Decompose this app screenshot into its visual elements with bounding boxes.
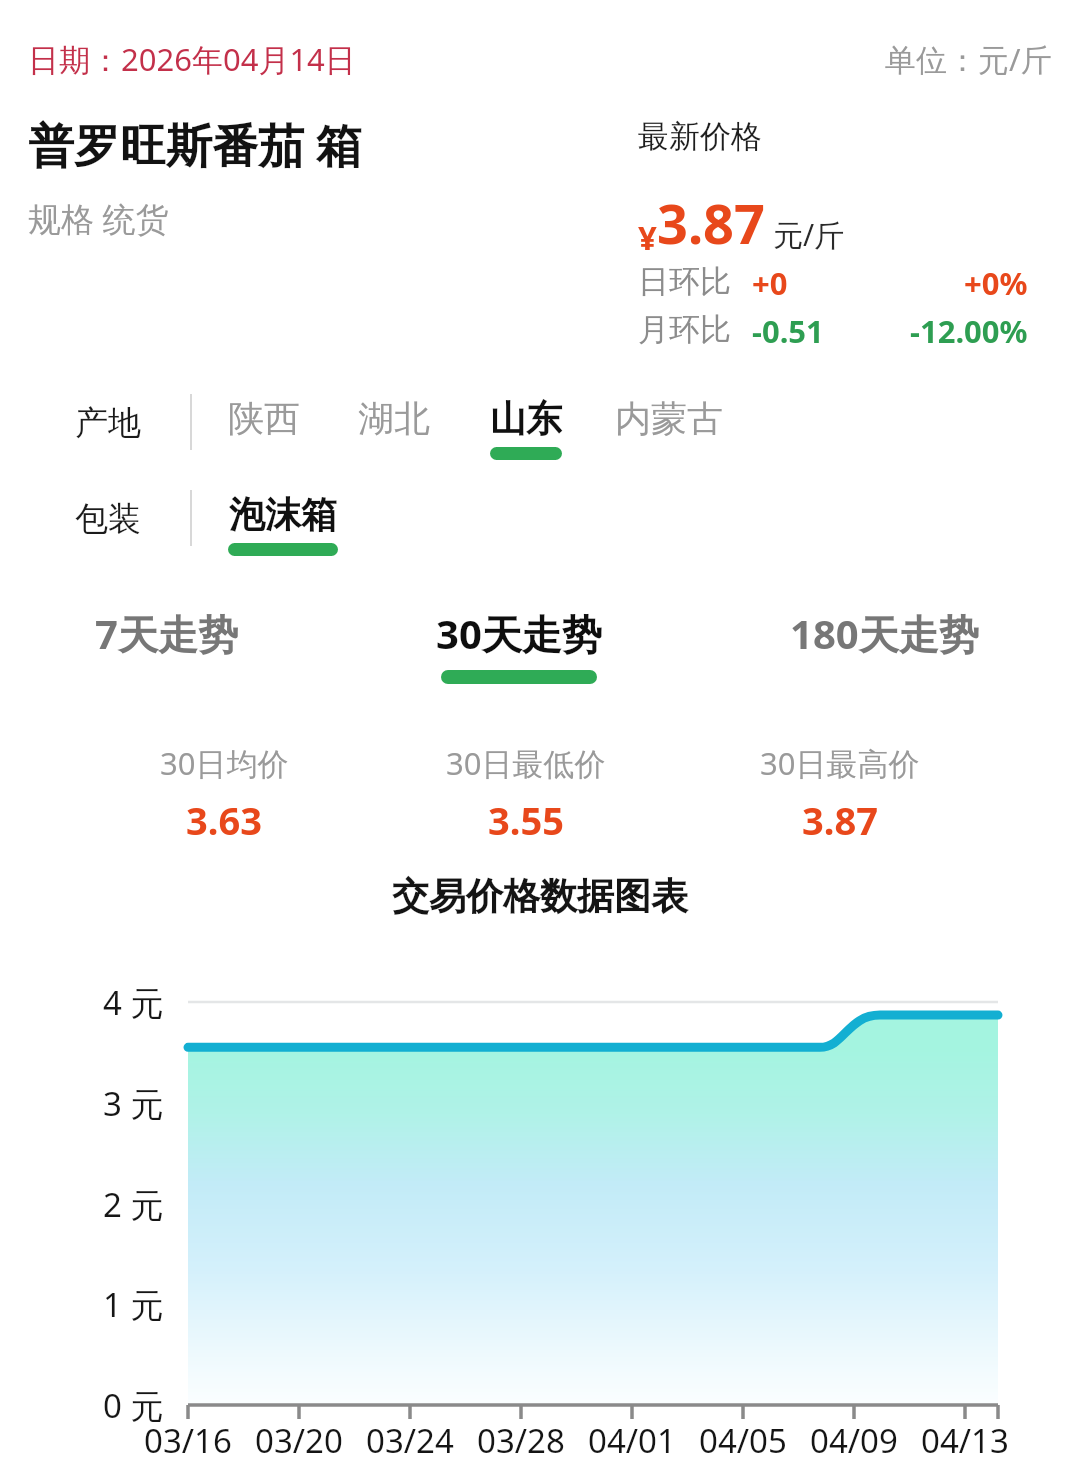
staticText: 04/01 <box>588 1418 676 1462</box>
staticText: 交易价格数据图表 <box>0 873 1080 920</box>
staticText: 产地 <box>75 402 141 444</box>
staticText: 180天走势 <box>790 606 979 661</box>
staticText: 4 元 <box>103 980 164 1025</box>
staticText: 3.55 <box>488 794 564 846</box>
button[interactable]: 湖北 <box>358 396 430 447</box>
button[interactable]: 山东 <box>490 396 562 460</box>
staticText: 0 元 <box>103 1383 164 1428</box>
staticText: 3.87 <box>657 186 765 260</box>
staticText: 03/28 <box>477 1418 565 1462</box>
staticText: 普罗旺斯番茄 箱 <box>28 113 362 176</box>
staticText: 2 元 <box>103 1182 164 1227</box>
button[interactable]: 泡沫箱 <box>228 492 338 556</box>
staticText: 3 元 <box>103 1081 164 1126</box>
staticText: +0 <box>752 262 788 304</box>
staticText: -0.51 <box>752 310 824 352</box>
staticText: 泡沫箱 <box>229 492 337 537</box>
staticText: 3.87 <box>802 794 878 846</box>
staticText: ¥ <box>638 215 657 260</box>
staticText: 30日最高价 <box>760 742 920 784</box>
staticText: 03/24 <box>366 1418 454 1462</box>
staticText: 03/20 <box>255 1418 343 1462</box>
staticText: -12.00% <box>910 310 1028 352</box>
staticText: 1 元 <box>103 1282 164 1327</box>
staticText: 月环比 <box>638 310 731 349</box>
staticText: 04/09 <box>810 1418 898 1462</box>
staticText: 04/05 <box>699 1418 787 1462</box>
button[interactable]: 内蒙古 <box>615 396 723 447</box>
staticText: 日期：2026年04月14日 <box>28 38 356 80</box>
staticText: 30天走势 <box>436 606 602 661</box>
button[interactable]: 7天走势 <box>16 606 316 696</box>
staticText: 最新价格 <box>638 117 762 156</box>
staticText: 包装 <box>75 498 141 540</box>
button[interactable]: 30天走势 <box>369 606 669 696</box>
staticText: 规格 统货 <box>28 196 169 241</box>
staticText: +0% <box>964 262 1028 304</box>
button[interactable]: 180天走势 <box>734 606 1034 696</box>
staticText: 元/斤 <box>773 214 845 255</box>
staticText: 30日最低价 <box>446 742 606 784</box>
staticText: 单位：元/斤 <box>885 38 1052 80</box>
staticText: 04/13 <box>921 1418 1009 1462</box>
staticText: 陕西 <box>228 396 300 441</box>
staticText: 03/16 <box>144 1418 232 1462</box>
staticText: 3.63 <box>186 794 262 846</box>
staticText: 内蒙古 <box>615 396 723 441</box>
staticText: 7天走势 <box>95 606 238 661</box>
staticText: 30日均价 <box>160 742 289 784</box>
button[interactable]: 陕西 <box>228 396 300 447</box>
staticText: 日环比 <box>638 262 731 301</box>
staticText: 山东 <box>490 396 562 441</box>
staticText: 湖北 <box>358 396 430 441</box>
